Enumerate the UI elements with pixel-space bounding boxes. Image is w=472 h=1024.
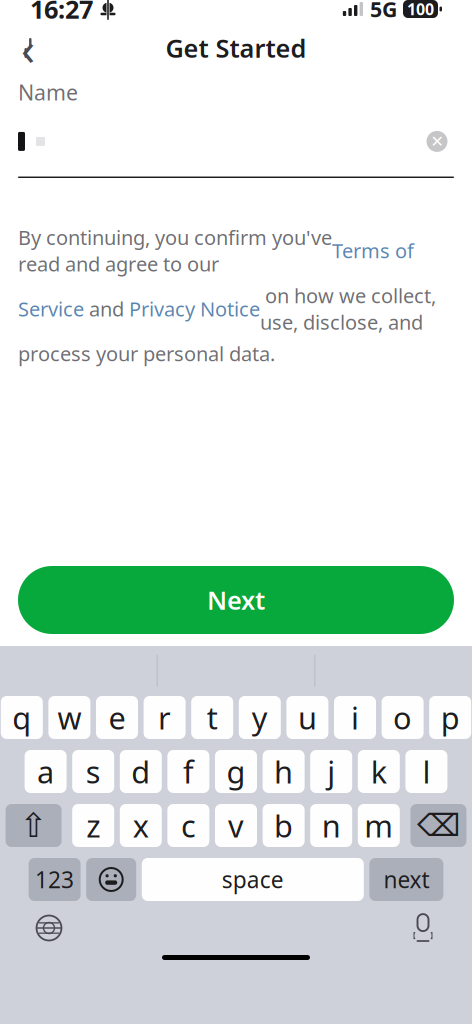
button[interactable]: y (239, 696, 281, 739)
staticText: x (133, 805, 149, 846)
button[interactable]: Privacy Notice (129, 295, 260, 322)
staticText: q (12, 697, 31, 738)
button[interactable]: a (25, 750, 67, 793)
button[interactable]: Dictation (400, 907, 446, 949)
button[interactable]: Emoji (86, 858, 136, 901)
staticText: m (364, 805, 393, 846)
button[interactable]: space (142, 858, 364, 901)
staticText: t (207, 697, 218, 738)
staticText: space (222, 864, 284, 894)
button[interactable]: f (167, 750, 209, 793)
button[interactable]: h (263, 750, 305, 793)
button[interactable]: m (358, 804, 400, 847)
staticText: c (181, 805, 196, 846)
staticText: e (108, 697, 125, 738)
button[interactable]: z (72, 804, 114, 847)
button[interactable]: b (263, 804, 305, 847)
button[interactable]: p (429, 696, 471, 739)
button[interactable]: g (215, 750, 257, 793)
staticText: process your personal data. (18, 340, 275, 367)
button[interactable]: k (358, 750, 400, 793)
staticText: 100 (407, 0, 434, 20)
button[interactable]: Backspace (410, 804, 466, 847)
staticText: i (351, 697, 359, 738)
staticText: and (84, 295, 129, 322)
staticText: ‹ (21, 18, 35, 78)
staticText: By continuing, you confirm you've read a… (18, 224, 332, 277)
staticText: Terms of (332, 237, 414, 264)
staticText: p (441, 697, 460, 738)
button[interactable]: t (191, 696, 233, 739)
staticText: j (327, 751, 335, 792)
staticText: Service (18, 295, 84, 322)
button[interactable]: Next (18, 566, 454, 634)
staticText: k (371, 751, 387, 792)
staticText: Privacy Notice (129, 295, 260, 322)
staticText: Name (18, 78, 78, 106)
staticText: z (86, 805, 100, 846)
button[interactable]: j (310, 750, 352, 793)
staticText: 123 (35, 864, 74, 894)
staticText: n (322, 805, 341, 846)
staticText: next (383, 864, 429, 894)
button[interactable]: Shift (6, 804, 62, 847)
button[interactable]: i (334, 696, 376, 739)
staticText: r (158, 697, 171, 738)
staticText: u (298, 697, 317, 738)
staticText: ⇧ (20, 807, 48, 844)
button[interactable]: o (382, 696, 424, 739)
button[interactable]: e (96, 696, 138, 739)
button[interactable]: d (120, 750, 162, 793)
button[interactable]: x (120, 804, 162, 847)
staticText: b (274, 805, 293, 846)
staticText: ✕ (430, 132, 443, 151)
button[interactable]: r (144, 696, 186, 739)
button[interactable]: Next keyboard (26, 907, 72, 949)
staticText: w (57, 697, 81, 738)
button[interactable]: v (215, 804, 257, 847)
button[interactable]: Back (5, 25, 51, 71)
button[interactable]: Service (18, 295, 84, 322)
button[interactable]: s (72, 750, 114, 793)
staticText: g (226, 751, 245, 792)
staticText: s (86, 751, 101, 792)
staticText: h (274, 751, 293, 792)
button[interactable]: 123 (29, 858, 81, 901)
button[interactable]: c (167, 804, 209, 847)
button[interactable]: q (1, 696, 43, 739)
button[interactable]: n (310, 804, 352, 847)
staticText: on how we collect, use, disclose, and (260, 282, 436, 335)
staticText: a (37, 751, 54, 792)
staticText: o (393, 697, 412, 738)
button[interactable]: next (369, 858, 443, 901)
staticText: Get Started (165, 31, 306, 65)
button[interactable]: l (405, 750, 447, 793)
staticText: f (183, 751, 194, 792)
staticText: y (252, 697, 268, 738)
button[interactable]: Clear text (420, 124, 454, 158)
button[interactable]: u (286, 696, 328, 739)
button[interactable]: Terms of (332, 237, 414, 264)
staticText: l (422, 751, 430, 792)
staticText: ⌫ (417, 808, 460, 843)
staticText: Next (207, 583, 265, 617)
staticText: v (228, 805, 244, 846)
staticText: 16:27 (30, 0, 93, 26)
staticText: 5G (370, 0, 397, 24)
staticText: d (131, 751, 150, 792)
button[interactable]: w (48, 696, 90, 739)
